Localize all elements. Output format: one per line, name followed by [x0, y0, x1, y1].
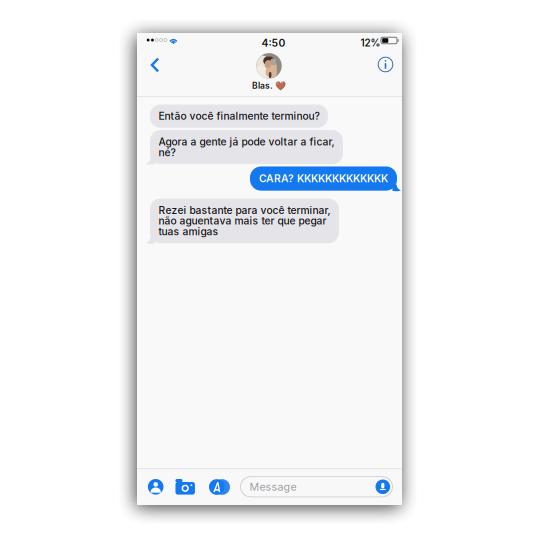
button[interactable]: Blas.: [224, 53, 314, 91]
button[interactable]: Apps: [204, 475, 229, 499]
button[interactable]: Message: [240, 477, 392, 497]
staticText: CARA? KKKKKKKKKKKKK: [259, 172, 388, 185]
staticText: Rezei bastante para você terminar,: [158, 204, 330, 216]
staticText: 4:50: [261, 37, 285, 49]
staticText: 12%: [360, 37, 380, 49]
button[interactable]: App Store: [145, 475, 167, 499]
staticText: tuas amigas: [158, 225, 218, 238]
button[interactable]: Back: [142, 52, 168, 78]
staticText: Message: [249, 480, 296, 493]
staticText: 🤎: [275, 81, 286, 91]
button[interactable]: Conversation details: [372, 51, 398, 77]
button[interactable]: Camera: [172, 475, 198, 499]
staticText: Agora a gente já pode voltar a ficar,: [158, 135, 334, 148]
staticText: Então você finalmente terminou?: [158, 110, 319, 122]
staticText: Blas.: [252, 81, 273, 91]
staticText: não aguentava mais ter que pegar: [158, 215, 326, 227]
staticText: né?: [158, 146, 175, 159]
